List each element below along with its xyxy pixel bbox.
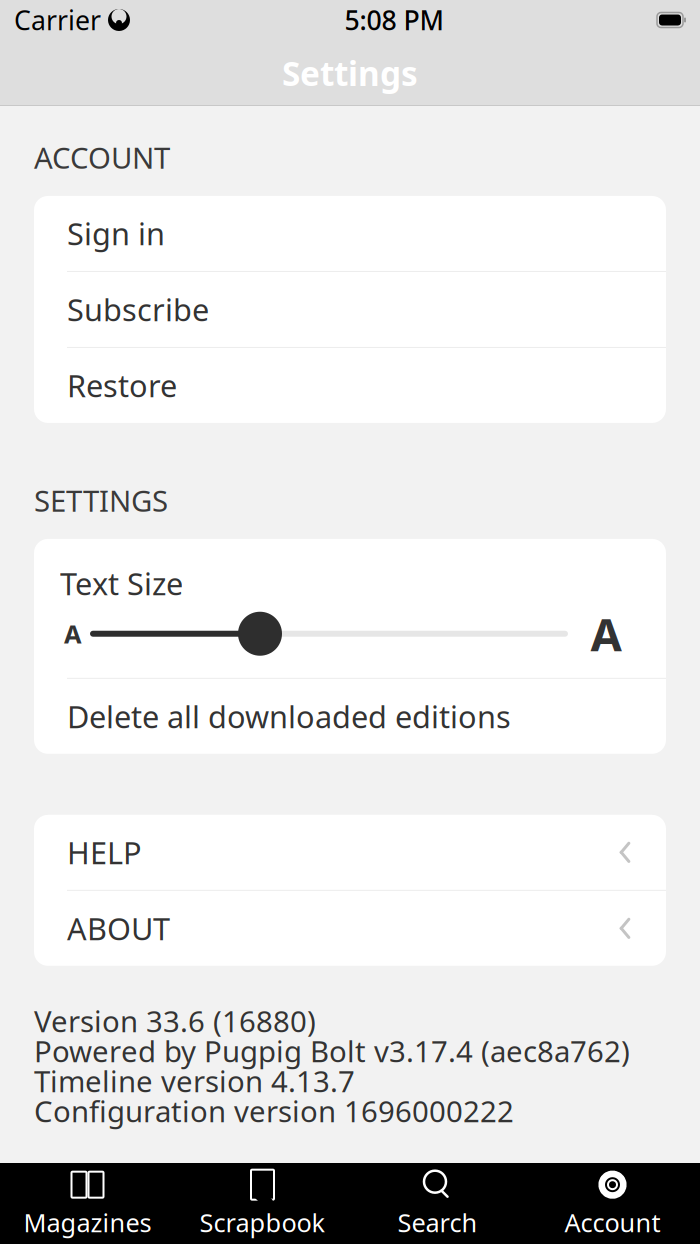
staticText: Settings [282, 51, 418, 95]
staticText: Search [397, 1206, 477, 1239]
staticText: SETTINGS [34, 481, 168, 520]
button[interactable]: Account [525, 1163, 700, 1244]
staticText: Delete all downloaded editions [67, 696, 511, 737]
staticText: Restore [67, 365, 177, 406]
button[interactable]: Delete all downloaded editions [34, 679, 666, 754]
staticText: Carrier [14, 2, 101, 38]
staticText: HELP [67, 832, 142, 873]
button[interactable]: HELP [34, 815, 666, 890]
staticText: ACCOUNT [34, 138, 170, 177]
staticText: Configuration version 1696000222 [34, 1091, 514, 1130]
staticText: A [64, 617, 82, 650]
staticText: Subscribe [67, 289, 209, 330]
staticText: Timeline version 4.13.7 [34, 1061, 355, 1100]
staticText: Account [564, 1206, 660, 1239]
staticText: Version 33.6 (16880) [34, 1001, 316, 1040]
staticText: 5:08 PM [344, 2, 443, 38]
button[interactable]: Scrapbook [175, 1163, 350, 1244]
staticText: Sign in [67, 213, 165, 254]
staticText: Magazines [23, 1206, 151, 1239]
staticText: ABOUT [67, 908, 170, 949]
button[interactable]: Restore [34, 348, 666, 423]
button[interactable]: Magazines [0, 1163, 175, 1244]
button[interactable]: Sign in [34, 196, 666, 271]
button[interactable]: Subscribe [34, 272, 666, 347]
staticText: A [590, 604, 621, 664]
staticText: Text Size [60, 563, 183, 604]
staticText: Powered by Pugpig Bolt v3.17.4 (aec8a762… [34, 1031, 630, 1070]
button[interactable]: ABOUT [34, 891, 666, 966]
staticText: Scrapbook [199, 1206, 325, 1239]
button[interactable]: Search [350, 1163, 525, 1244]
